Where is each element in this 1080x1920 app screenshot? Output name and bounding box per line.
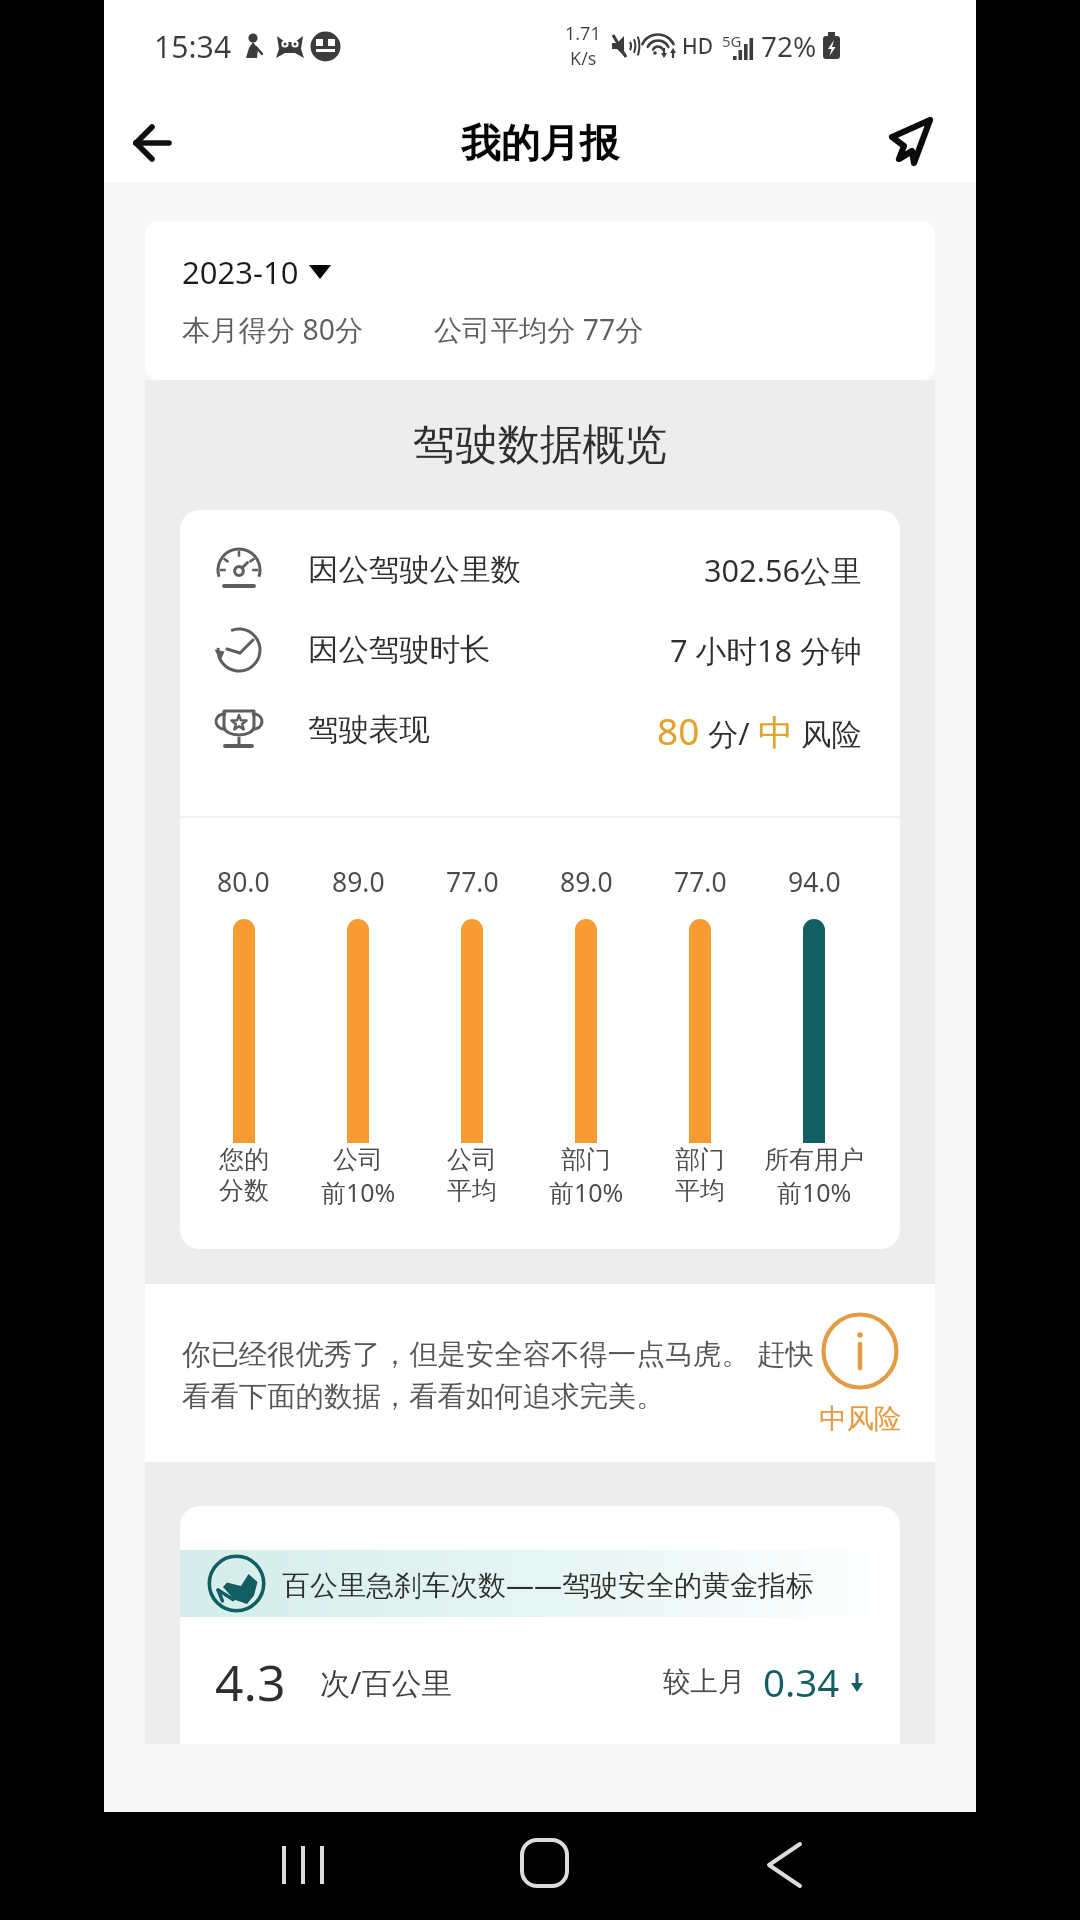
- staticText: 驾驶数据概览: [145, 418, 935, 471]
- staticText: 80.0: [217, 864, 270, 900]
- staticText: 77.0: [674, 864, 727, 900]
- staticText: 302.56公里: [704, 549, 862, 591]
- staticText: K/s: [570, 46, 597, 71]
- staticText: 15:34: [154, 26, 232, 67]
- staticText: 72%: [761, 27, 817, 65]
- staticText: HD: [682, 32, 714, 61]
- staticText: 4.3: [215, 1648, 286, 1716]
- staticText: 您的: [219, 1144, 269, 1175]
- staticText: 看看下面的数据，看看如何追求完美。: [182, 1379, 665, 1415]
- button[interactable]: 因公驾驶公里数: [180, 530, 900, 610]
- staticText: 2023-10: [182, 251, 299, 293]
- staticText: 因公驾驶公里数: [308, 551, 521, 589]
- staticText: 5G: [722, 31, 742, 51]
- staticText: 较上月: [663, 1665, 746, 1700]
- staticText: 分数: [219, 1175, 269, 1206]
- staticText: 你已经很优秀了，但是安全容不得一点马虎。 赶快: [182, 1334, 814, 1373]
- staticText: 部门: [561, 1144, 611, 1175]
- staticText: 因公驾驶时长: [308, 631, 491, 669]
- staticText: 公司: [333, 1144, 383, 1175]
- staticText: 中风险: [819, 1402, 902, 1437]
- staticText: 公司: [447, 1144, 497, 1175]
- staticText: 公司平均分 77分: [434, 310, 644, 349]
- staticText: 平均: [447, 1175, 497, 1206]
- staticText: 我的月报: [461, 119, 619, 169]
- staticText: 次/百公里: [320, 1662, 452, 1703]
- button[interactable]: Back: [745, 1832, 825, 1912]
- staticText: 77.0: [446, 864, 499, 900]
- button[interactable]: 因公驾驶时长: [180, 610, 900, 690]
- staticText: 驾驶表现: [308, 711, 430, 749]
- button[interactable]: Home: [504, 1832, 584, 1912]
- staticText: 风险: [793, 713, 862, 755]
- button[interactable]: Share: [878, 99, 958, 179]
- staticText: 89.0: [560, 864, 613, 900]
- staticText: 分/: [700, 713, 758, 755]
- staticText: 94.0: [788, 864, 841, 900]
- staticText: 部门: [675, 1144, 725, 1175]
- staticText: 7 小时18 分钟: [670, 629, 862, 671]
- staticText: 前10%: [549, 1175, 624, 1209]
- staticText: 80: [657, 705, 700, 755]
- staticText: 89.0: [332, 864, 385, 900]
- staticText: 所有用户: [764, 1144, 864, 1175]
- staticText: 平均: [675, 1175, 725, 1206]
- staticText: 1.71: [565, 21, 601, 46]
- button[interactable]: 驾驶表现: [180, 690, 900, 770]
- button[interactable]: Back: [109, 99, 189, 179]
- staticText: 前10%: [777, 1175, 852, 1209]
- staticText: 0.34: [763, 1656, 840, 1708]
- staticText: 本月得分 80分: [182, 310, 364, 349]
- staticText: 百公里急刹车次数——驾驶安全的黄金指标: [282, 1565, 815, 1603]
- staticText: 中: [758, 711, 793, 755]
- button[interactable]: Recents: [263, 1832, 343, 1912]
- staticText: 前10%: [321, 1175, 396, 1209]
- button[interactable]: 2023-10: [182, 251, 332, 293]
